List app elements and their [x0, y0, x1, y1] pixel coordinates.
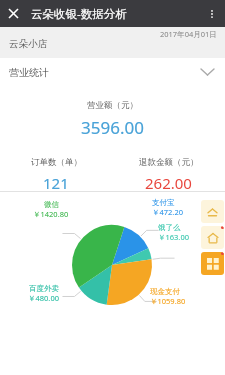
- staticText: 2017年04月01日: [160, 29, 217, 39]
- staticText: 云朵收银-数据分析: [31, 6, 127, 22]
- button[interactable]: Close: [0, 0, 27, 27]
- button[interactable]: Collapse: [201, 200, 224, 223]
- staticText: 121: [43, 173, 69, 191]
- staticText: 3596.00: [81, 116, 144, 139]
- staticText: 微信: [44, 200, 59, 209]
- staticText: 订单数（单）: [31, 157, 82, 168]
- button[interactable]: Home: [201, 226, 224, 249]
- staticText: 262.00: [145, 173, 192, 191]
- staticText: 现金支付: [150, 287, 180, 296]
- staticText: 支付宝: [152, 198, 175, 207]
- staticText: ￥1059.80: [150, 296, 186, 306]
- button[interactable]: More options: [198, 0, 225, 27]
- staticText: 营业额（元）: [87, 100, 138, 111]
- staticText: ￥472.20: [152, 207, 183, 217]
- staticText: 营业统计: [9, 66, 49, 79]
- staticText: 云朵小店: [9, 38, 47, 50]
- staticText: 百度外卖: [29, 284, 59, 293]
- staticText: 退款金额（元）: [139, 157, 199, 168]
- staticText: ￥480.00: [28, 293, 59, 303]
- staticText: ￥163.00: [158, 232, 189, 242]
- button[interactable]: 营业统计: [0, 58, 225, 86]
- staticText: 饿了么: [158, 223, 181, 232]
- button[interactable]: Menu: [201, 252, 224, 275]
- staticText: ￥1420.80: [33, 209, 69, 219]
